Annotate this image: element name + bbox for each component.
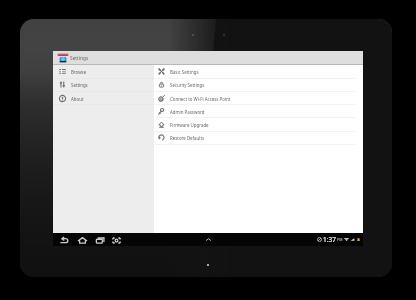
staticText: 1:37 [323, 235, 336, 244]
button[interactable]: Recents [95, 235, 105, 245]
staticText: About [71, 96, 84, 102]
staticText: PM [337, 237, 343, 242]
button[interactable]: Connect to Wi-Fi Access Point [154, 92, 363, 105]
staticText: Security Settings [170, 82, 205, 88]
staticText: Restore Defaults [170, 135, 205, 141]
button[interactable]: Settings [53, 78, 154, 91]
button[interactable]: Basic Settings [154, 65, 363, 78]
staticText: Connect to Wi-Fi Access Point [170, 96, 231, 102]
button[interactable]: Status: 1:37 PM [317, 235, 361, 244]
button[interactable]: Firmware Upgrade [154, 118, 363, 131]
button[interactable]: Screenshot [111, 235, 121, 245]
staticText: Browse [71, 69, 87, 75]
staticText: Settings [70, 55, 89, 62]
button[interactable]: Back [59, 235, 69, 245]
button[interactable]: Restore Defaults [154, 131, 363, 144]
staticText: Settings [71, 82, 88, 88]
button[interactable]: About [53, 92, 154, 105]
staticText: Firmware Upgrade [170, 122, 209, 128]
staticText: Admin Password [170, 109, 205, 115]
button[interactable]: Home [77, 235, 87, 245]
button[interactable]: Browse [53, 65, 154, 78]
button[interactable]: Admin Password [154, 105, 363, 118]
button[interactable]: Expand system bar [205, 236, 212, 243]
staticText: Basic Settings [170, 69, 199, 75]
button[interactable]: Security Settings [154, 78, 363, 91]
